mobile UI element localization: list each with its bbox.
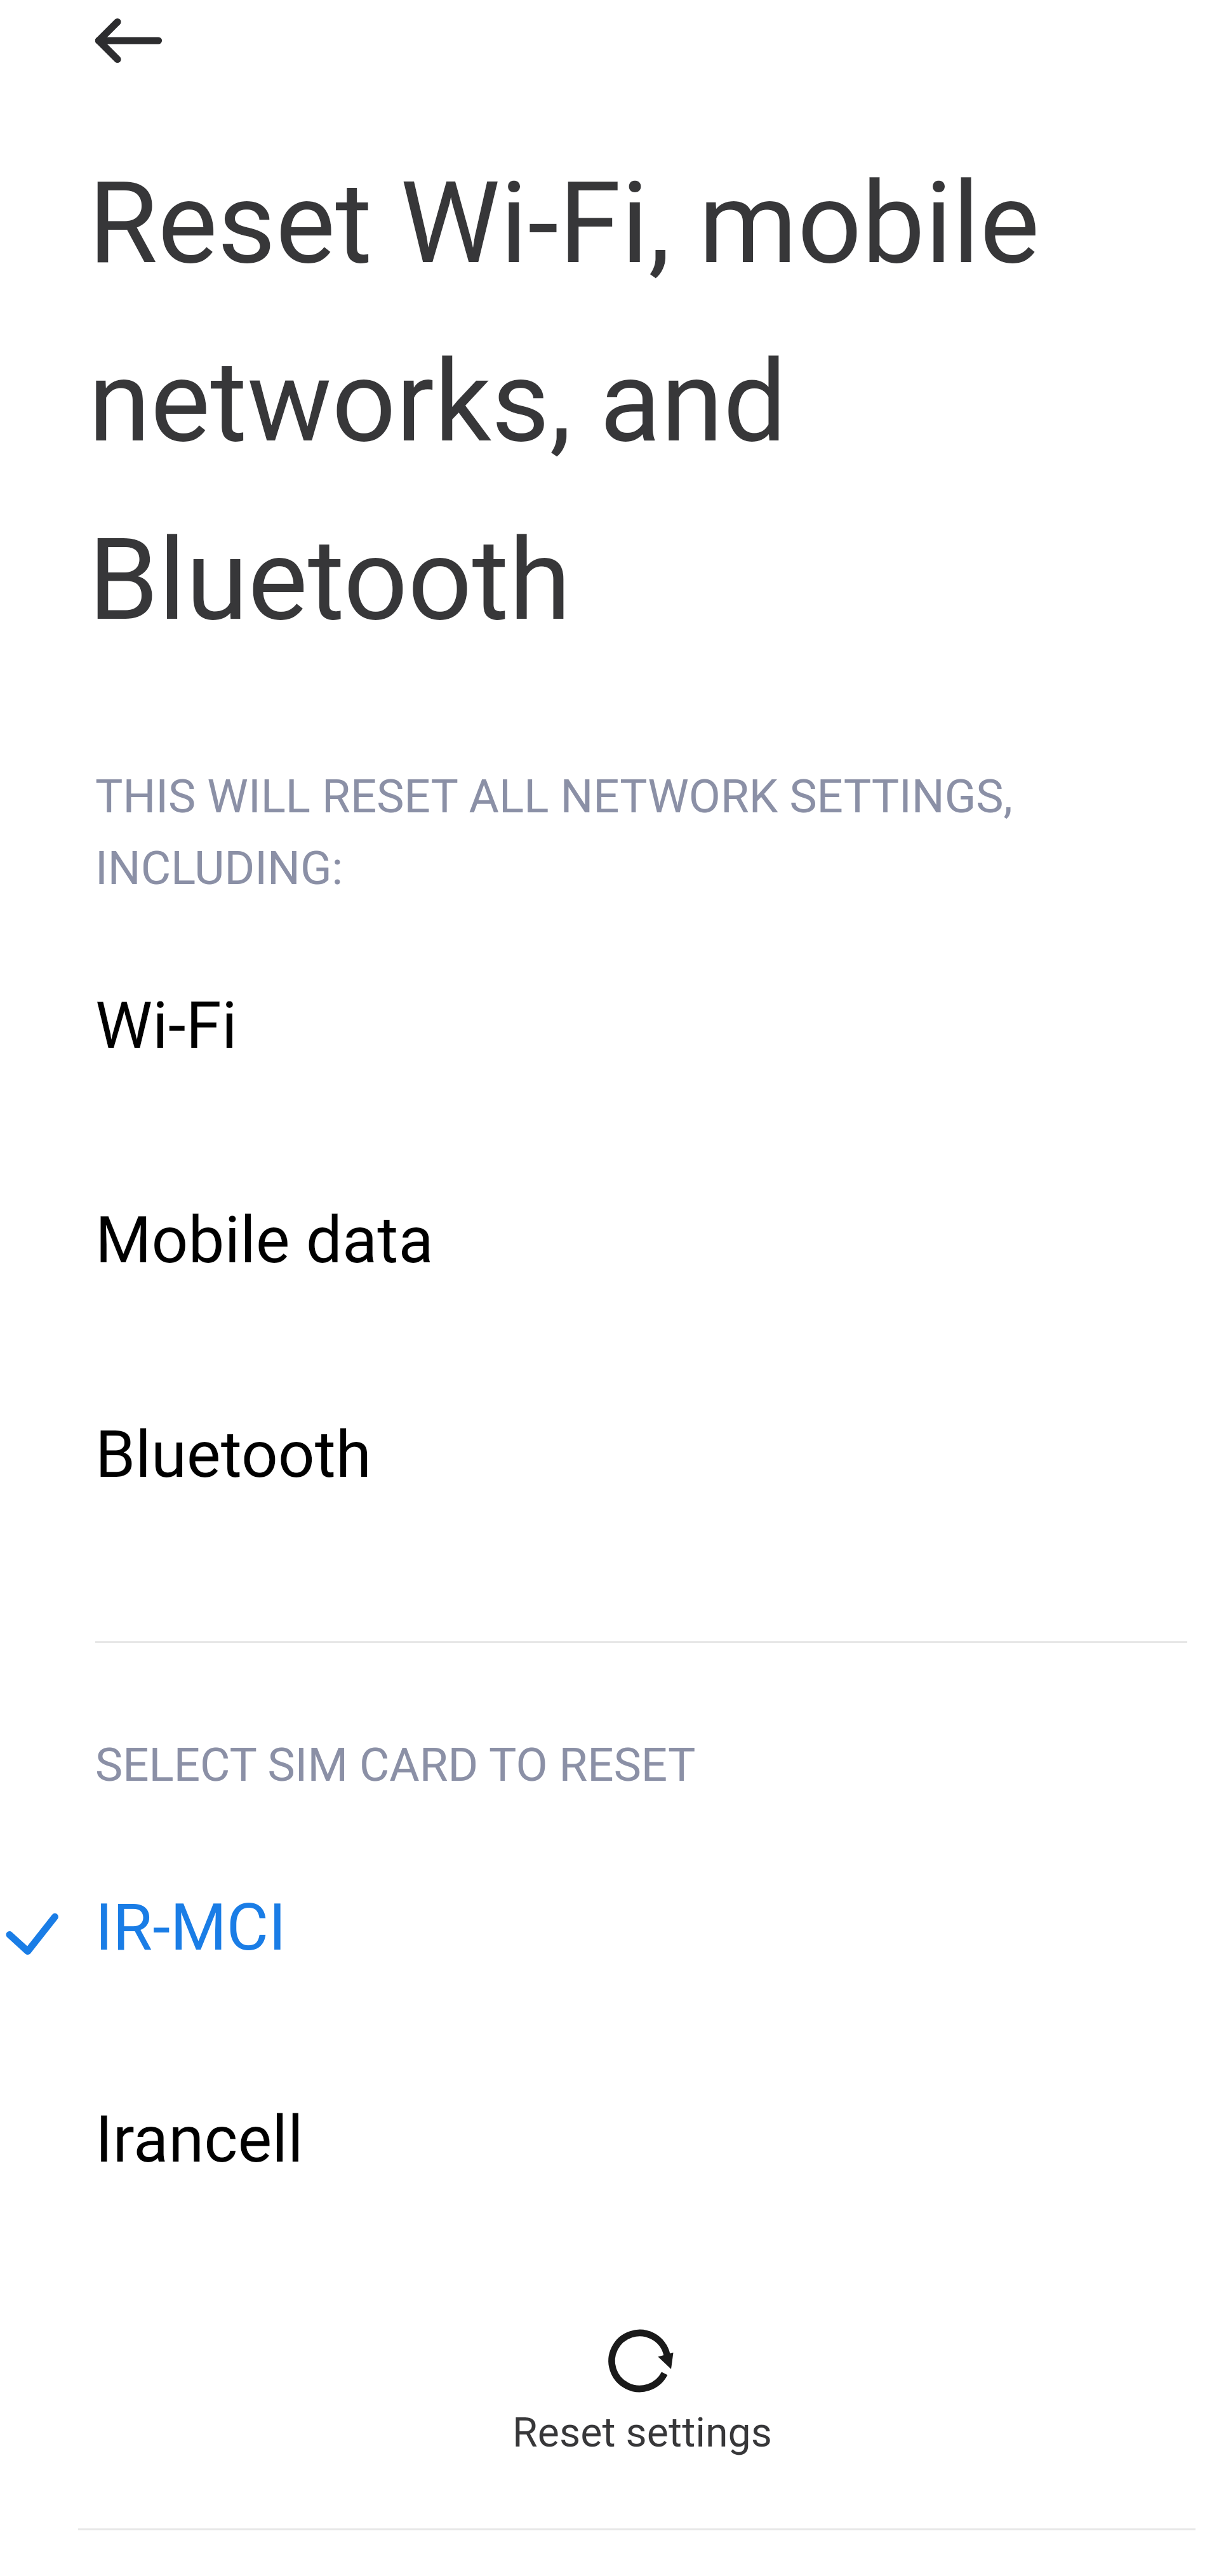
button[interactable]: Reset settings bbox=[444, 2285, 775, 2500]
staticText: THIS WILL RESET ALL NETWORK SETTINGS, IN… bbox=[95, 770, 1048, 895]
button[interactable]: Bluetooth bbox=[0, 1347, 1219, 1562]
staticText: Irancell bbox=[95, 2102, 303, 2177]
button[interactable]: Wi-Fi bbox=[0, 918, 1219, 1133]
staticText: Bluetooth bbox=[95, 1417, 371, 1493]
button[interactable]: Back bbox=[48, 0, 208, 80]
staticText: Reset settings bbox=[512, 2408, 773, 2457]
staticText: Wi-Fi bbox=[95, 988, 237, 1064]
staticText: SELECT SIM CARD TO RESET bbox=[95, 1738, 696, 1792]
button[interactable]: Irancell bbox=[0, 2032, 1219, 2247]
button[interactable]: IR-MCI bbox=[0, 1820, 1219, 2035]
button[interactable]: Mobile data bbox=[0, 1133, 1219, 1347]
staticText: Reset Wi-Fi, mobile networks, and Blueto… bbox=[88, 157, 1104, 646]
staticText: IR-MCI bbox=[95, 1890, 286, 1965]
staticText: Mobile data bbox=[95, 1203, 434, 1278]
